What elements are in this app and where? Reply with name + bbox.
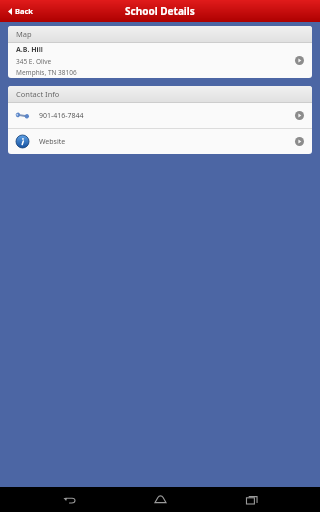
staticText: Contact Info [16,89,60,99]
staticText: Map [16,29,32,39]
other: Website [16,135,29,148]
other: More [295,137,304,146]
staticText: School Details [125,4,195,18]
staticText: 345 E. Olive [16,57,52,66]
staticText: Back [15,6,33,16]
other: More [295,111,304,120]
button[interactable]: Home [137,487,183,512]
button[interactable]: Recents [229,487,275,512]
button[interactable]: Back [4,3,37,19]
other: More [295,56,304,65]
button[interactable]: Call [8,103,312,128]
button[interactable]: Back [46,487,92,512]
staticText: 901-416-7844 [39,111,295,121]
staticText: Memphis, TN 38106 [16,68,77,77]
button[interactable]: Website [8,129,312,154]
staticText: A.B. Hill [16,45,43,55]
other: Call [16,109,29,122]
staticText: Website [39,137,295,147]
button[interactable]: A.B. Hill [8,43,312,78]
